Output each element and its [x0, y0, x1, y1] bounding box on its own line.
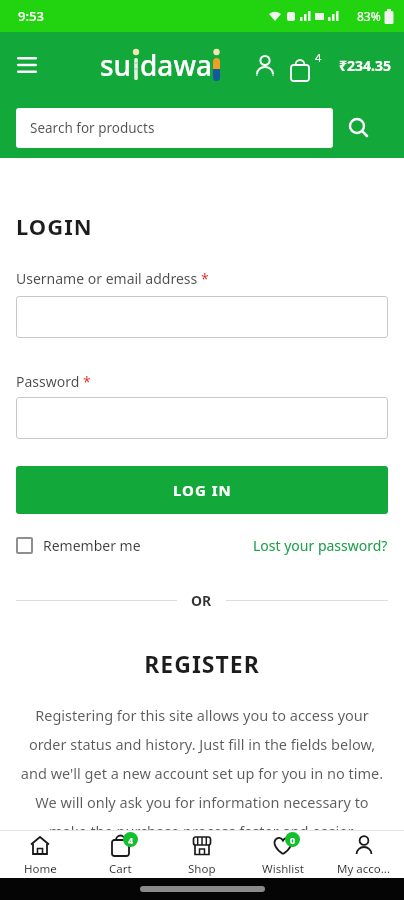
- button[interactable]: Home: [0, 832, 80, 877]
- button[interactable]: Search for products: [16, 108, 333, 148]
- staticText: My acco...: [337, 861, 390, 877]
- staticText: 9:53: [18, 7, 44, 25]
- button[interactable]: 4: [80, 832, 161, 877]
- button[interactable]: Shop: [161, 832, 242, 877]
- staticText: 4: [128, 834, 134, 846]
- staticText: ₹234.35: [339, 56, 391, 75]
- button[interactable]: Remember me: [16, 536, 141, 555]
- staticText: Wishlist: [262, 861, 304, 877]
- staticText: Cart: [109, 861, 132, 877]
- staticText: Home: [24, 861, 57, 877]
- button[interactable]: [251, 51, 279, 79]
- button[interactable]: My acco...: [323, 832, 404, 877]
- button[interactable]: [16, 397, 388, 439]
- button[interactable]: [16, 296, 388, 338]
- staticText: 0: [290, 834, 296, 846]
- staticText: REGISTER: [16, 648, 388, 679]
- button[interactable]: LOG IN: [16, 466, 388, 514]
- staticText: Registering for this site allows you to …: [16, 705, 388, 830]
- button[interactable]: Lost your password?: [253, 536, 388, 555]
- staticText: Search for products: [30, 119, 155, 137]
- staticText: *: [201, 269, 209, 288]
- staticText: LOG IN: [173, 480, 232, 500]
- button[interactable]: [341, 110, 377, 146]
- staticText: Shop: [188, 861, 216, 877]
- staticText: Remember me: [43, 536, 141, 555]
- staticText: su: [100, 46, 132, 84]
- staticText: OR: [191, 591, 212, 610]
- staticText: LOGIN: [16, 211, 93, 241]
- button[interactable]: 4: [289, 48, 323, 82]
- button[interactable]: 0: [242, 832, 323, 877]
- staticText: 83%: [357, 8, 381, 24]
- staticText: Username or email address: [16, 269, 201, 288]
- staticText: dawa: [140, 46, 212, 84]
- button[interactable]: [14, 52, 40, 78]
- staticText: Password: [16, 372, 83, 391]
- staticText: 4: [315, 50, 322, 65]
- staticText: *: [83, 372, 91, 391]
